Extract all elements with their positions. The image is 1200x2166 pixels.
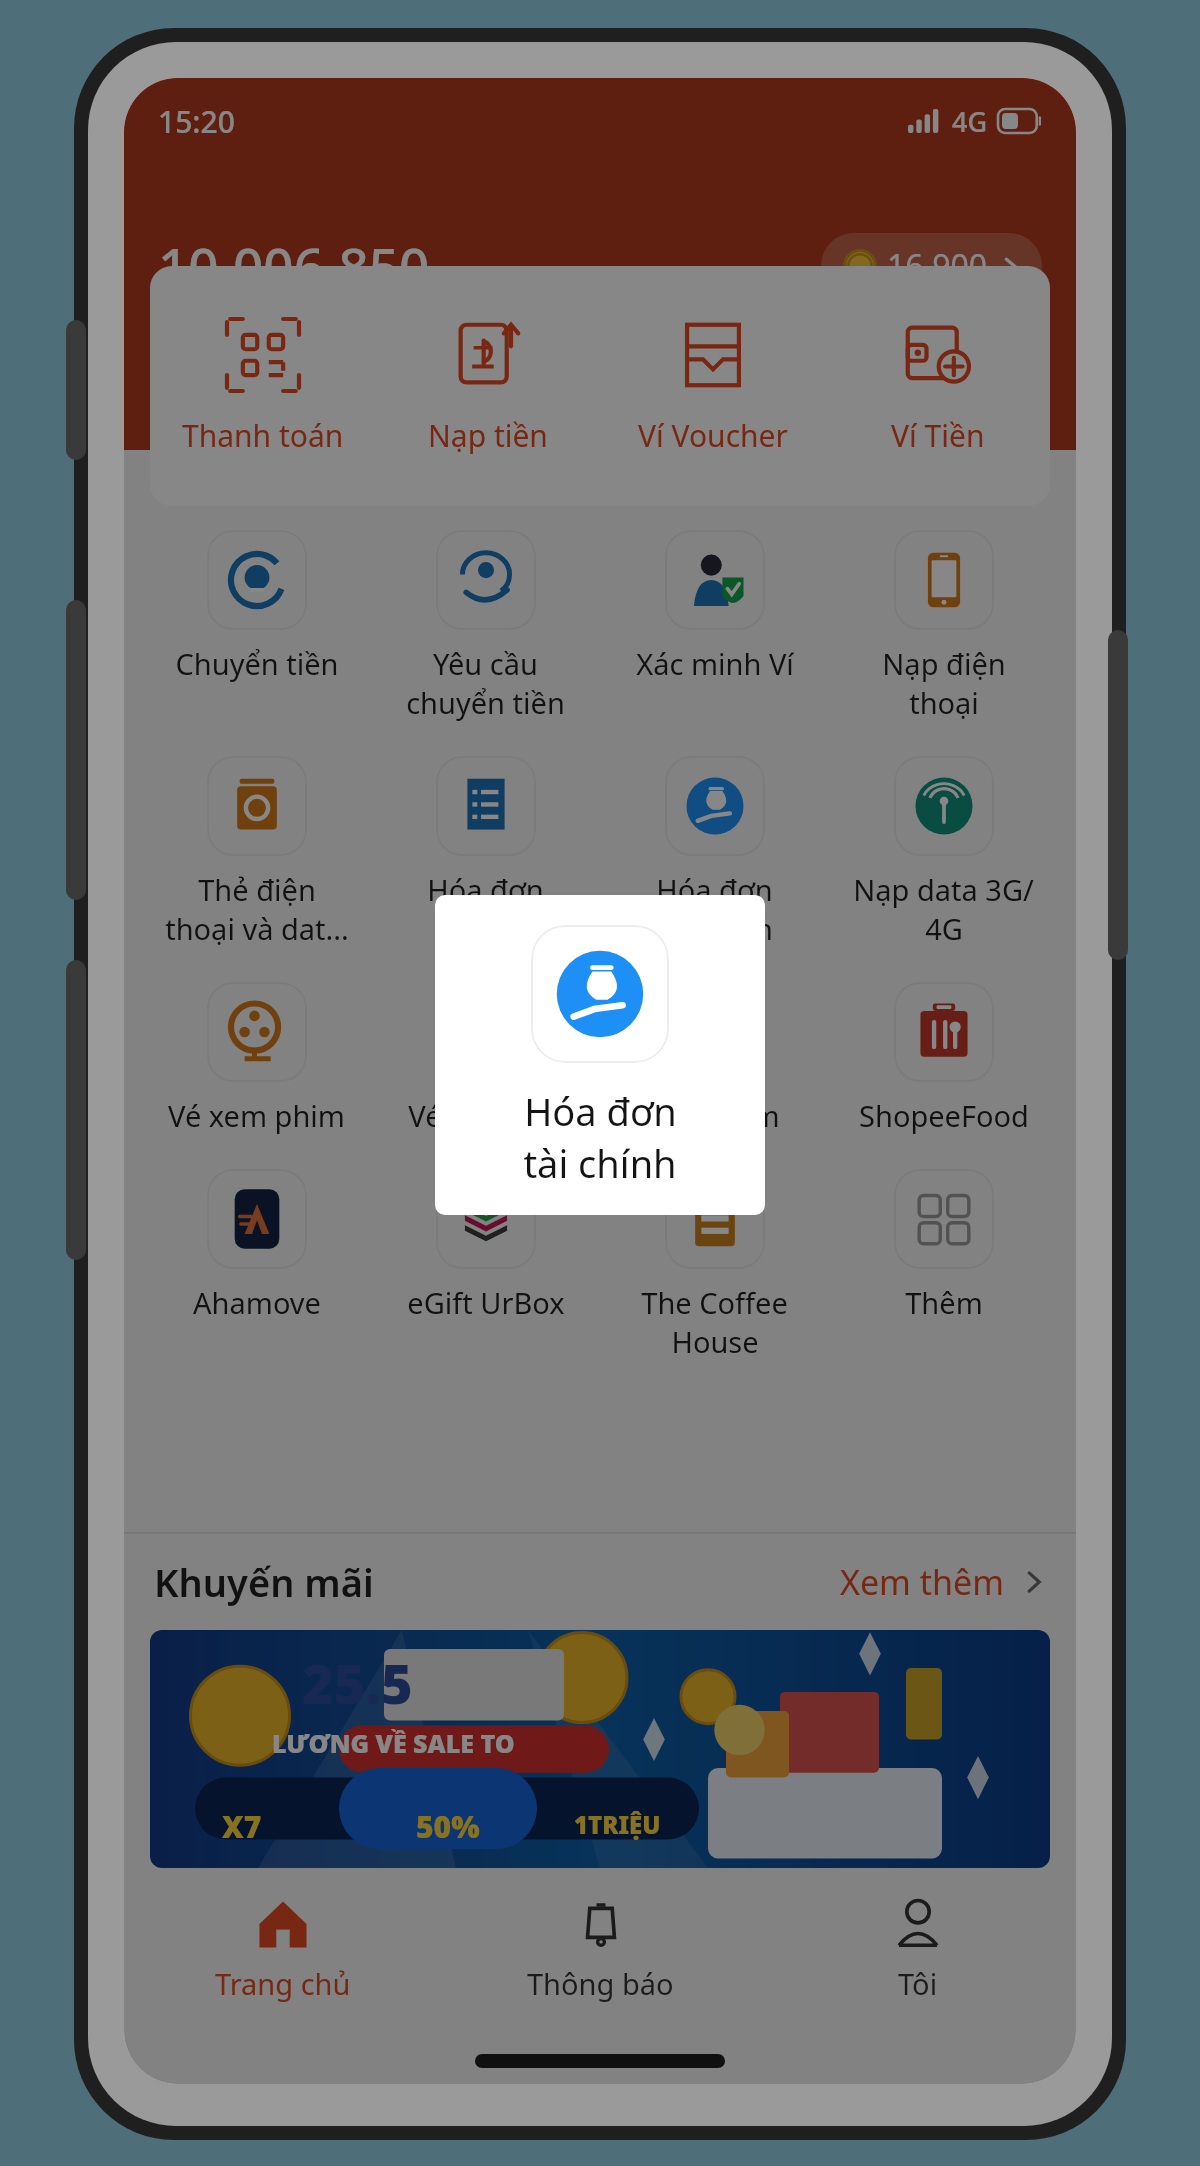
staticText: Vé máy bay	[408, 1096, 564, 1135]
staticText: 10.006.850	[158, 230, 430, 302]
staticText: Thẻ điện	[198, 870, 316, 909]
staticText: tài chính	[523, 1137, 677, 1189]
staticText: House	[671, 1322, 759, 1361]
button[interactable]: Xem thêm	[840, 1559, 1046, 1605]
staticText: 15:20	[158, 101, 235, 142]
button[interactable]: Thêm	[829, 1161, 1058, 1330]
button[interactable]: ShopeeFood	[829, 974, 1058, 1143]
staticText: Ví Voucher	[638, 415, 788, 456]
staticText: Nạp điện	[882, 644, 1006, 683]
button[interactable]: Tôi	[759, 1874, 1076, 2024]
staticText: Yêu cầu	[433, 644, 538, 683]
button[interactable]: Thẻ điện	[142, 748, 371, 956]
staticText: Bảo hiểm	[650, 1096, 780, 1135]
staticText: eGift UrBox	[407, 1283, 565, 1322]
staticText: 25.5	[302, 1646, 413, 1720]
button[interactable]: Nạp điện	[829, 522, 1058, 730]
staticText: Ahamove	[193, 1283, 321, 1322]
button[interactable]: eGift UrBox	[371, 1161, 600, 1330]
button[interactable]: Bảo hiểm	[600, 974, 829, 1143]
staticText: X7	[222, 1806, 262, 1847]
staticText: 4G	[952, 103, 988, 140]
staticText: Trang chủ	[215, 1964, 351, 2003]
staticText: chuyển tiền	[406, 683, 565, 722]
button[interactable]: Ahamove	[142, 1161, 371, 1330]
button[interactable]: Thanh toán	[150, 266, 375, 506]
staticText: tài chính	[656, 909, 773, 948]
staticText: Hóa đơn	[656, 870, 773, 909]
button[interactable]: Nạp tiền	[375, 266, 600, 506]
staticText: Xác minh Ví	[636, 644, 794, 683]
staticText: Tôi	[898, 1964, 938, 2003]
staticText: thoại	[909, 683, 979, 722]
staticText: The Coffee	[641, 1283, 788, 1322]
staticText: ShopeeFood	[859, 1096, 1029, 1135]
staticText: Hóa đơn	[427, 870, 544, 909]
button[interactable]: Yêu cầu	[371, 522, 600, 730]
staticText: 16.900	[887, 244, 988, 288]
button[interactable]: Vé xem phim	[142, 974, 371, 1143]
staticText: Khuyến mãi	[154, 1556, 374, 1608]
staticText: LƯƠNG VỀ SALE TO	[272, 1726, 515, 1760]
button[interactable]: Vé máy bay	[371, 974, 600, 1143]
button[interactable]: 10.006.850	[158, 226, 499, 306]
staticText: Vé xem phim	[168, 1096, 345, 1135]
button[interactable]: Nạp data 3G/	[829, 748, 1058, 956]
button[interactable]: Xác minh Ví	[600, 522, 829, 691]
button[interactable]: Ví Voucher	[600, 266, 825, 506]
staticText: Thông báo	[527, 1964, 674, 2003]
button[interactable]: The Coffee	[600, 1161, 829, 1369]
button[interactable]: Thông báo	[442, 1874, 759, 2024]
staticText: Hóa đơn	[524, 1085, 677, 1137]
staticText: Xem thêm	[840, 1559, 1004, 1605]
staticText: Nạp data 3G/	[853, 870, 1034, 909]
staticText: 50%	[416, 1806, 480, 1847]
staticText: 1TRIỆU	[574, 1808, 661, 1841]
staticText: Thanh toán	[182, 415, 344, 456]
staticText: 4G	[925, 909, 963, 948]
button[interactable]: Hóa đơn	[371, 748, 600, 917]
staticText: Nạp tiền	[428, 415, 548, 456]
button[interactable]: Ví Tiền	[825, 266, 1050, 506]
staticText: Chuyển tiền	[175, 644, 339, 683]
staticText: Thêm	[905, 1283, 983, 1322]
button[interactable]: Chuyển tiền	[142, 522, 371, 691]
button[interactable]: Hóa đơn	[600, 748, 829, 956]
button[interactable]: Trang chủ	[124, 1874, 442, 2024]
button[interactable]: Hóa đơn	[435, 895, 765, 1215]
staticText: Ví Tiền	[891, 415, 985, 456]
staticText: thoại và dat...	[165, 909, 349, 948]
button[interactable]: 16.900	[821, 233, 1042, 299]
